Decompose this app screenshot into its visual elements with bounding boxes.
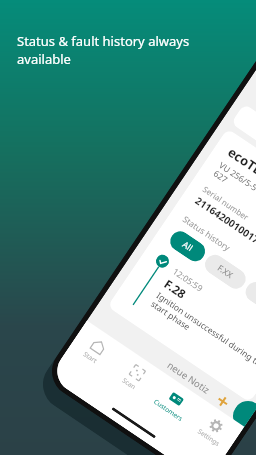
staticText: neue Notiz	[165, 359, 213, 397]
staticText: F.XX	[215, 262, 236, 281]
button[interactable]: M.XX	[242, 278, 256, 322]
button[interactable]: Customers	[146, 380, 200, 427]
staticText: Status history	[180, 213, 233, 254]
button[interactable]: All	[166, 227, 209, 265]
staticText: Customers	[152, 397, 185, 423]
staticText: Settings	[196, 427, 222, 448]
button[interactable]: Scan	[107, 353, 160, 400]
staticText: Start	[82, 349, 99, 365]
staticText: All	[180, 238, 195, 254]
staticText: ecoTEC plus	[224, 143, 256, 201]
staticText: Status & fault history always available	[17, 32, 190, 68]
staticText: Scan	[121, 376, 138, 391]
staticText: F.28	[161, 276, 189, 302]
button[interactable]: Start	[68, 327, 121, 374]
staticText: 21164200100170032	[193, 193, 256, 260]
button[interactable]: neue Notiz	[165, 359, 231, 409]
staticText: VU 256/5-5 (N-DE) ecoTEC plus 627	[211, 159, 256, 246]
button[interactable]: F.XX	[201, 251, 250, 292]
button[interactable]	[231, 103, 256, 220]
staticText: Ignition unsuccessful during the start p…	[148, 290, 256, 380]
staticText: Serial number	[201, 183, 252, 223]
button[interactable]: Settings	[186, 407, 240, 454]
button[interactable]: Add	[227, 395, 256, 430]
staticText: 12:05:59	[170, 266, 205, 295]
